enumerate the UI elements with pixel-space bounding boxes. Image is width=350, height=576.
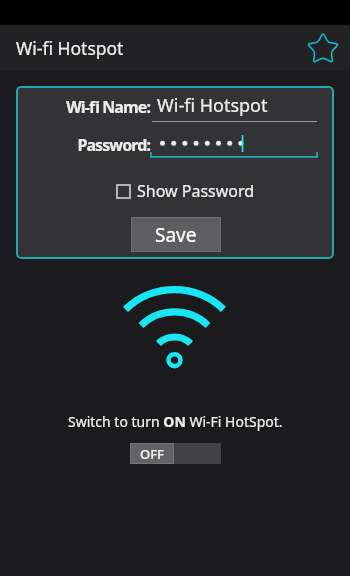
staticText: Save: [155, 222, 197, 248]
staticText: Wi-fi Hotspot: [157, 93, 268, 118]
staticText: Switch to turn ON Wi-Fi HotSpot.: [68, 412, 283, 431]
staticText: Show Password: [137, 180, 255, 202]
button[interactable]: Favorite: [302, 27, 344, 69]
button[interactable]: Show Password: [116, 180, 255, 202]
button[interactable]: Save: [131, 217, 221, 252]
staticText: Wi-fi Name:: [16, 96, 150, 118]
button[interactable]: OFF: [130, 443, 221, 464]
staticText: Wi-fi Hotspot: [16, 36, 124, 60]
staticText: Password:: [16, 134, 150, 156]
staticText: OFF: [140, 445, 164, 463]
